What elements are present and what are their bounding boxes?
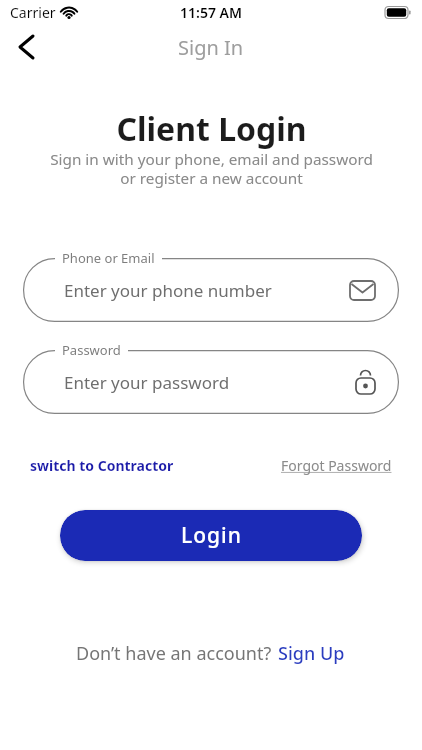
staticText: Password bbox=[62, 341, 121, 359]
button[interactable] bbox=[8, 29, 44, 65]
button[interactable]: Login bbox=[60, 510, 362, 561]
staticText: Don’t have an account? bbox=[76, 641, 276, 666]
staticText: Sign In bbox=[178, 34, 244, 61]
button[interactable]: Sign Up bbox=[276, 639, 347, 668]
staticText: 11:57 AM bbox=[180, 3, 242, 22]
button[interactable]: Password bbox=[23, 350, 399, 414]
staticText: Enter your phone number bbox=[64, 279, 272, 302]
staticText: Client Login bbox=[116, 107, 307, 151]
staticText: Sign in with your phone, email and passw… bbox=[50, 149, 373, 188]
button[interactable]: Forgot Password bbox=[277, 452, 396, 479]
staticText: Login bbox=[181, 521, 242, 550]
button[interactable]: Phone or Email bbox=[23, 258, 399, 322]
staticText: Phone or Email bbox=[62, 249, 155, 267]
staticText: Enter your password bbox=[64, 371, 230, 394]
staticText: Carrier bbox=[10, 3, 56, 22]
button[interactable]: switch to Contractor bbox=[26, 452, 178, 479]
